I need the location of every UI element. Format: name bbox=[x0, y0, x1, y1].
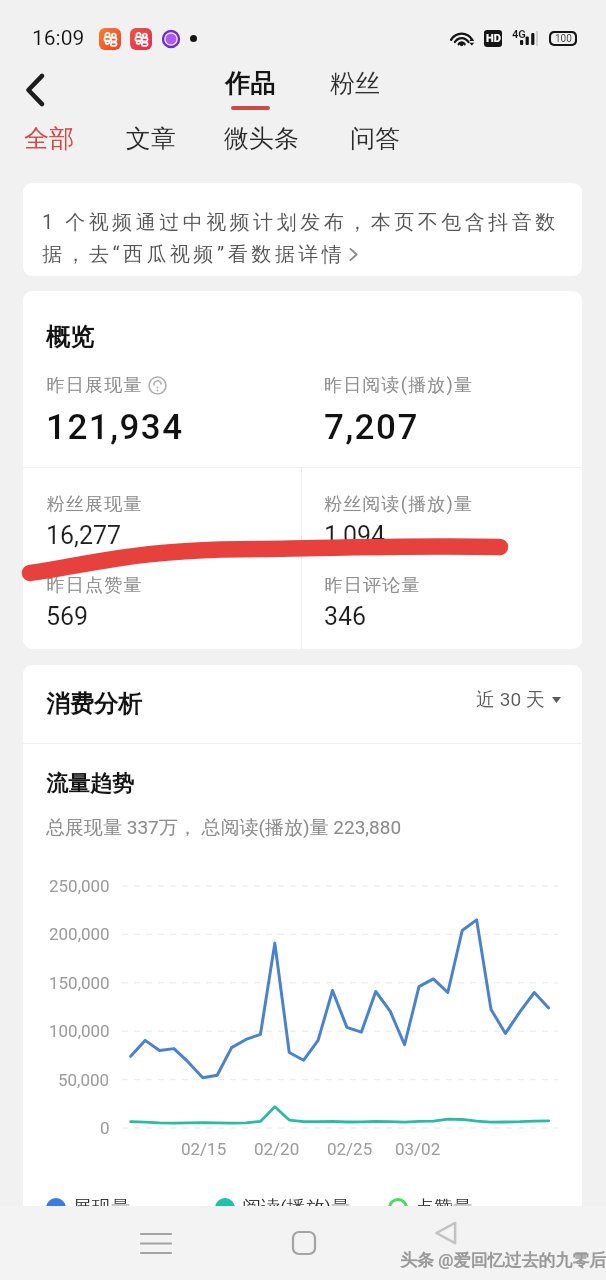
staticText: 03/02 bbox=[395, 1139, 441, 1159]
staticText: 展现量 bbox=[73, 1196, 130, 1206]
button[interactable]: 作品 bbox=[225, 68, 275, 110]
staticText: 346 bbox=[324, 602, 367, 631]
staticText: 粉丝 bbox=[330, 68, 380, 99]
button[interactable]: 阅读(播放)量 bbox=[215, 1196, 351, 1206]
button[interactable]: 微头条 bbox=[224, 123, 299, 154]
staticText: 概览 bbox=[46, 322, 94, 352]
button[interactable]: Home bbox=[281, 1220, 327, 1266]
staticText: 流量趋势 bbox=[46, 770, 134, 798]
staticText: 02/20 bbox=[254, 1139, 300, 1159]
staticText: 16:09 bbox=[32, 26, 85, 51]
staticText: 1 个视频通过中视频计划发布，本页不包含抖音数 bbox=[42, 210, 559, 235]
button[interactable]: 近 30 天 bbox=[476, 688, 561, 712]
staticText: 1,094 bbox=[324, 521, 386, 550]
staticText: 02/25 bbox=[327, 1139, 373, 1159]
staticText: 0 bbox=[100, 1118, 110, 1138]
button[interactable]: 展现量 bbox=[46, 1196, 130, 1206]
staticText: 569 bbox=[46, 602, 89, 631]
button[interactable]: 1 个视频通过中视频计划发布，本页不包含抖音数 bbox=[23, 183, 582, 276]
staticText: 121,934 bbox=[46, 407, 184, 448]
staticText: 200,000 bbox=[49, 924, 110, 944]
staticText: 100,000 bbox=[49, 1021, 110, 1041]
staticText: 阅读(播放)量 bbox=[242, 1196, 351, 1206]
staticText: 总展现量 337万， 总阅读(播放)量 223,880 bbox=[46, 816, 402, 840]
staticText: 昨日点赞量 bbox=[46, 574, 142, 597]
staticText: 250,000 bbox=[49, 876, 110, 896]
staticText: 消费分析 bbox=[46, 689, 142, 719]
button[interactable]: 粉丝 bbox=[330, 68, 380, 108]
staticText: 粉丝展现量 bbox=[46, 493, 142, 516]
staticText: 昨日阅读(播放)量 bbox=[324, 374, 474, 397]
staticText: 100 bbox=[555, 33, 572, 44]
staticText: 昨日展现量 bbox=[46, 374, 142, 397]
staticText: 头条 @爱回忆过去的九零后 bbox=[400, 1250, 606, 1271]
button[interactable]: 问答 bbox=[350, 123, 400, 154]
staticText: 4G bbox=[512, 28, 526, 41]
button[interactable]: Recent apps bbox=[133, 1220, 179, 1266]
staticText: 7,207 bbox=[324, 407, 419, 448]
staticText: 02/15 bbox=[181, 1139, 227, 1159]
staticText: HD bbox=[486, 32, 501, 45]
button[interactable]: 文章 bbox=[126, 123, 176, 154]
button[interactable]: 全部 bbox=[24, 123, 74, 154]
button[interactable]: Back bbox=[11, 66, 59, 114]
staticText: 150,000 bbox=[49, 973, 110, 993]
button[interactable]: Back bbox=[423, 1210, 469, 1256]
button[interactable]: 点赞量 bbox=[388, 1196, 472, 1206]
staticText: 近 30 天 bbox=[476, 688, 545, 712]
staticText: 昨日评论量 bbox=[324, 574, 420, 597]
staticText: 作品 bbox=[225, 68, 275, 99]
staticText: 据，去“西瓜视频”看数据详情 bbox=[42, 242, 346, 267]
staticText: 点赞量 bbox=[415, 1196, 472, 1206]
staticText: 16,277 bbox=[46, 521, 122, 550]
staticText: 粉丝阅读(播放)量 bbox=[324, 493, 474, 516]
staticText: 50,000 bbox=[58, 1070, 110, 1090]
